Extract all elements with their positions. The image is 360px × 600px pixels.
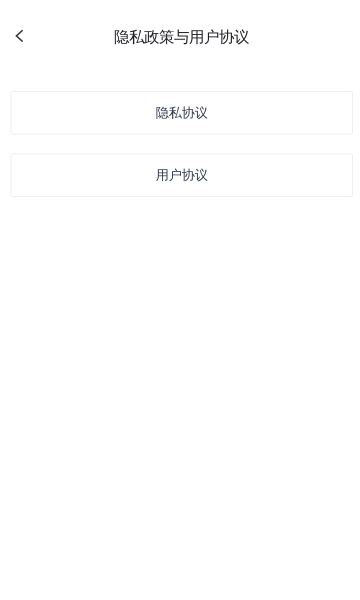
- staticText: 隐私政策与用户协议: [114, 27, 249, 47]
- staticText: 隐私协议: [156, 104, 208, 121]
- button[interactable]: 隐私协议: [11, 91, 352, 134]
- button[interactable]: 用户协议: [11, 154, 352, 196]
- button[interactable]: Back: [0, 14, 40, 58]
- staticText: 用户协议: [156, 167, 208, 183]
